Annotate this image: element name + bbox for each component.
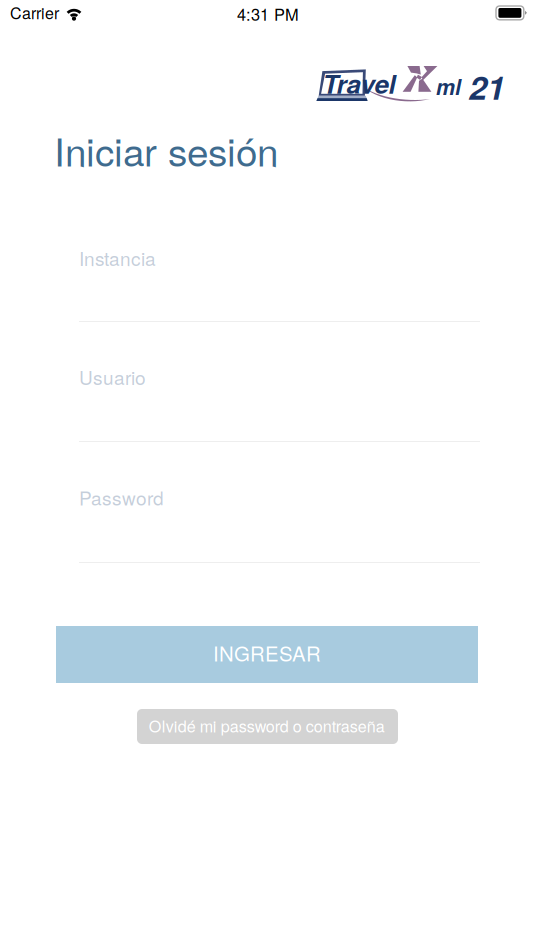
staticText: Password [79,483,164,511]
staticText: Olvidé mi password o contraseña [149,714,385,737]
button[interactable]: Olvidé mi password o contraseña [137,709,398,744]
staticText: Iniciar sesión [54,122,278,177]
staticText: Travel [322,64,395,102]
button[interactable]: INGRESAR [56,626,478,683]
staticText: Usuario [79,363,146,390]
staticText: 21 [469,63,505,110]
staticText: Carrier [10,1,59,24]
staticText: INGRESAR [213,638,321,667]
staticText: ml [436,71,461,101]
staticText: 4:31 PM [237,2,299,25]
staticText: Instancia [79,244,156,271]
